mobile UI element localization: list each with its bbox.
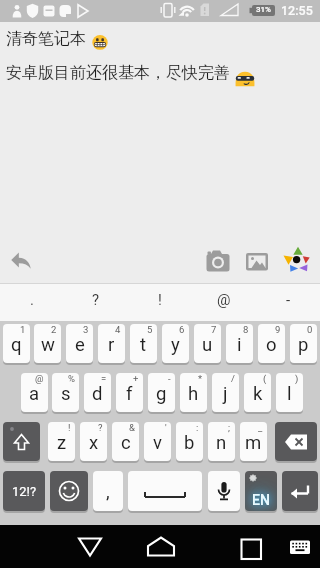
- button[interactable]: x: [80, 422, 107, 461]
- staticText: 5: [147, 324, 153, 335]
- staticText: h: [188, 383, 199, 405]
- button[interactable]: t: [130, 324, 157, 363]
- button[interactable]: .: [0, 283, 64, 321]
- staticText: 12!?: [12, 484, 37, 499]
- button[interactable]: [282, 245, 310, 273]
- staticText: s: [61, 383, 71, 405]
- staticText: ,: [106, 481, 110, 503]
- staticText: &: [129, 422, 135, 433]
- staticText: ): [295, 373, 299, 384]
- staticText: EN: [252, 492, 270, 508]
- staticText: 9: [275, 324, 281, 335]
- button[interactable]: h: [180, 373, 207, 412]
- staticText: @: [217, 291, 231, 309]
- button[interactable]: [208, 471, 240, 511]
- button[interactable]: [50, 471, 88, 511]
- staticText: :: [196, 422, 199, 433]
- staticText: y: [171, 334, 180, 356]
- staticText: b: [184, 432, 195, 454]
- button[interactable]: q: [3, 324, 30, 363]
- staticText: 8: [243, 324, 249, 335]
- staticText: .: [30, 291, 34, 309]
- button[interactable]: ?: [64, 283, 128, 321]
- staticText: k: [253, 383, 263, 405]
- staticText: g: [156, 383, 167, 405]
- button[interactable]: p: [290, 324, 317, 363]
- button[interactable]: a: [21, 373, 48, 412]
- button[interactable]: !: [128, 283, 192, 321]
- button[interactable]: r: [98, 324, 125, 363]
- button[interactable]: y: [162, 324, 189, 363]
- button[interactable]: [288, 539, 312, 557]
- staticText: 2: [51, 324, 57, 335]
- button[interactable]: ,: [93, 471, 123, 511]
- button[interactable]: f: [116, 373, 143, 412]
- button[interactable]: g: [148, 373, 175, 412]
- button[interactable]: u: [194, 324, 221, 363]
- staticText: c: [121, 432, 131, 454]
- staticText: l: [287, 383, 292, 405]
- staticText: 4: [115, 324, 121, 335]
- button[interactable]: [70, 534, 110, 560]
- button[interactable]: v: [144, 422, 171, 461]
- button[interactable]: [8, 247, 34, 273]
- button[interactable]: [203, 246, 231, 274]
- staticText: +: [133, 373, 139, 384]
- button[interactable]: j: [212, 373, 239, 412]
- button[interactable]: e: [66, 324, 93, 363]
- button[interactable]: l: [276, 373, 303, 412]
- button[interactable]: o: [258, 324, 285, 363]
- staticText: -: [286, 291, 291, 309]
- button[interactable]: c: [112, 422, 139, 461]
- staticText: _: [258, 422, 263, 433]
- staticText: /: [231, 373, 235, 384]
- staticText: !: [158, 291, 162, 309]
- button[interactable]: [282, 471, 318, 511]
- button[interactable]: m: [240, 422, 267, 461]
- button[interactable]: z: [48, 422, 75, 461]
- staticText: 1: [20, 324, 26, 335]
- staticText: v: [153, 432, 162, 454]
- staticText: t: [140, 334, 147, 356]
- staticText: ': [165, 422, 167, 433]
- button[interactable]: @: [192, 283, 256, 321]
- staticText: 31%: [256, 5, 271, 14]
- staticText: n: [216, 432, 227, 454]
- staticText: 清奇笔记本: [6, 29, 86, 49]
- button[interactable]: [231, 534, 271, 560]
- button[interactable]: EN: [245, 471, 277, 511]
- staticText: *: [198, 373, 203, 384]
- button[interactable]: s: [52, 373, 79, 412]
- staticText: o: [266, 334, 277, 356]
- staticText: f: [126, 383, 133, 405]
- staticText: %: [68, 373, 75, 384]
- button[interactable]: [3, 422, 40, 461]
- staticText: 3: [83, 324, 89, 335]
- button[interactable]: [141, 534, 181, 560]
- button[interactable]: d: [84, 373, 111, 412]
- button[interactable]: [242, 246, 270, 274]
- button[interactable]: k: [244, 373, 271, 412]
- staticText: 7: [211, 324, 217, 335]
- button[interactable]: b: [176, 422, 203, 461]
- staticText: 0: [307, 324, 313, 335]
- staticText: i: [237, 334, 242, 356]
- staticText: e: [75, 334, 85, 356]
- button[interactable]: 12!?: [3, 471, 45, 511]
- button[interactable]: -: [256, 283, 320, 321]
- staticText: w: [41, 334, 55, 356]
- staticText: z: [57, 432, 67, 454]
- staticText: j: [223, 383, 228, 405]
- button[interactable]: [275, 422, 317, 461]
- button[interactable]: i: [226, 324, 253, 363]
- staticText: m: [245, 432, 262, 454]
- staticText: u: [202, 334, 213, 356]
- button[interactable]: w: [34, 324, 61, 363]
- staticText: EN: [252, 492, 270, 508]
- button[interactable]: [128, 471, 202, 511]
- staticText: ?: [92, 291, 100, 309]
- staticText: 6: [179, 324, 185, 335]
- staticText: !: [68, 422, 71, 433]
- button[interactable]: n: [208, 422, 235, 461]
- staticText: (: [263, 373, 267, 384]
